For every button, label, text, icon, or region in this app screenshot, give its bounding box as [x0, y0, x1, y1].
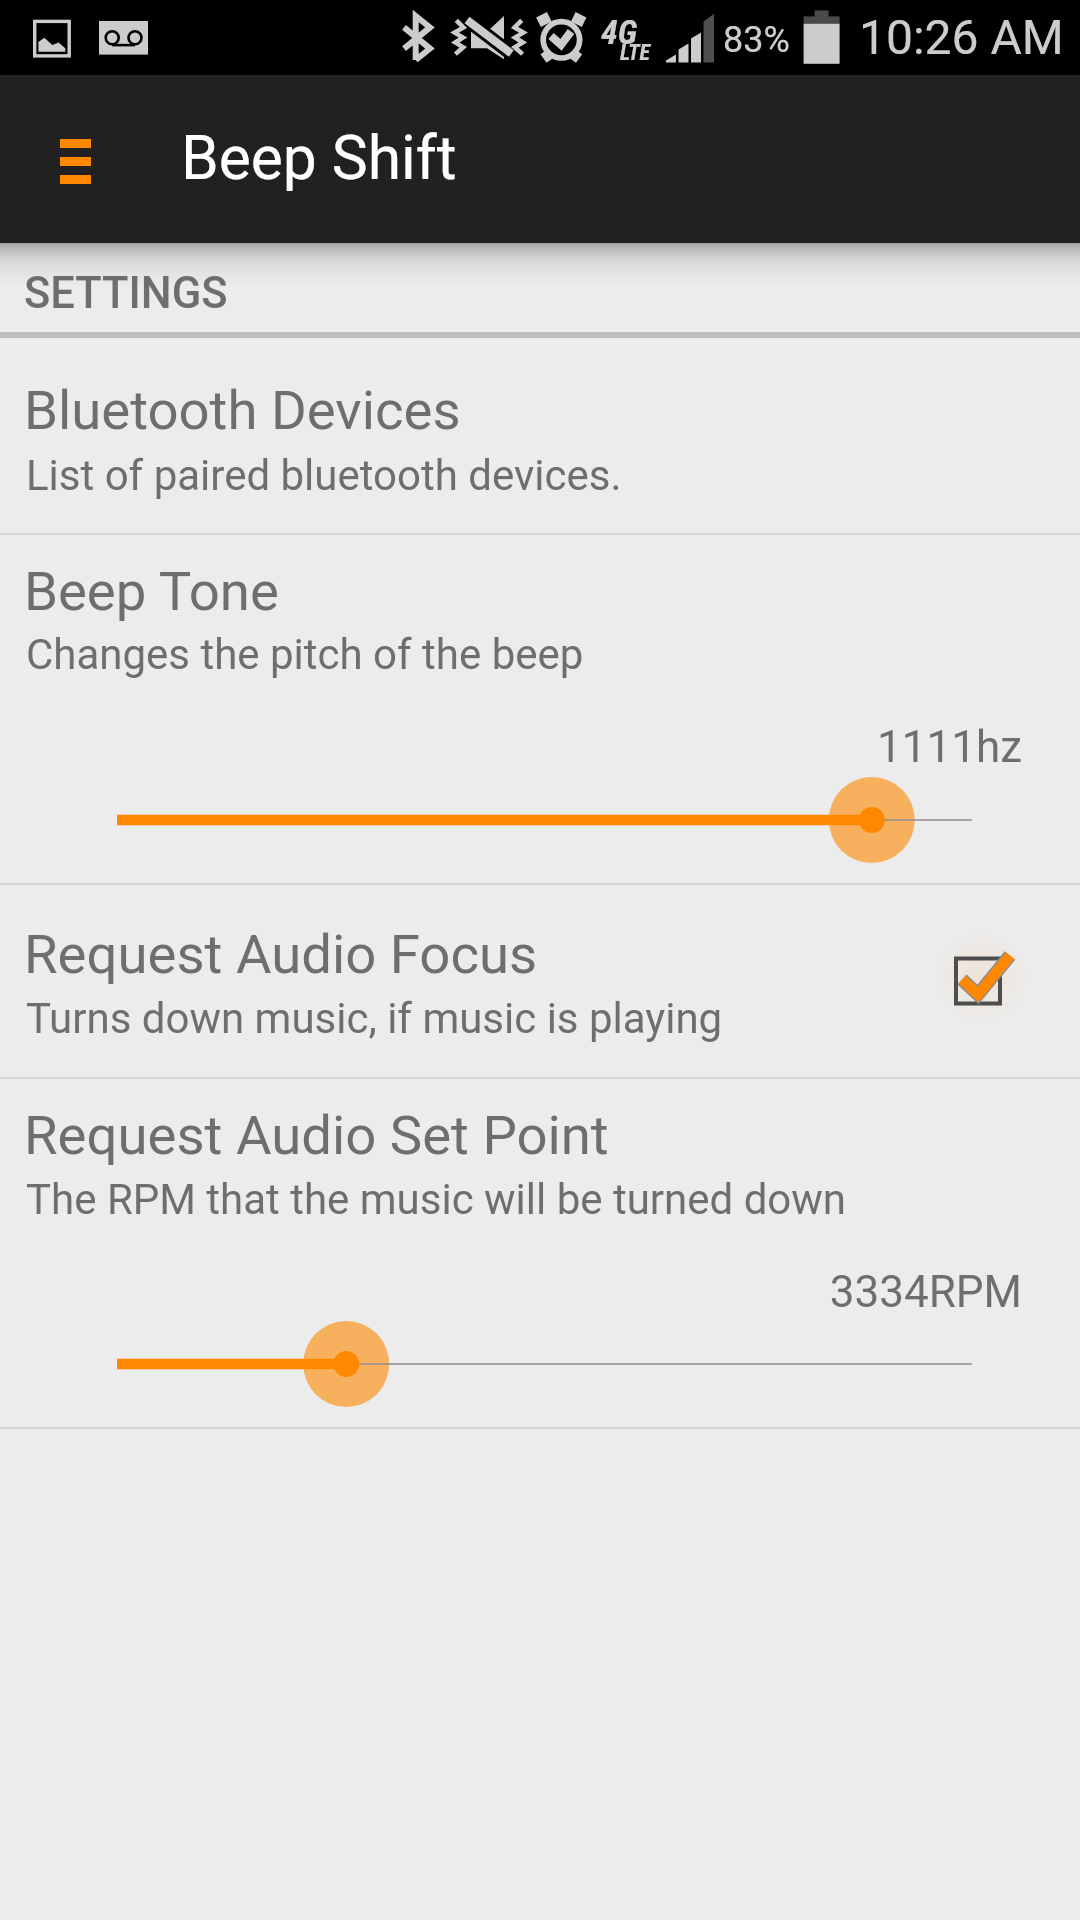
staticText: Beep Tone	[24, 559, 279, 623]
staticText: 4G	[601, 12, 637, 52]
button[interactable]: Open navigation menu	[38, 120, 113, 198]
staticText: Turns down music, if music is playing	[26, 994, 723, 1043]
staticText: Request Audio Set Point	[24, 1103, 609, 1167]
button[interactable]: Beep Tone	[0, 535, 1080, 883]
staticText: Changes the pitch of the beep	[26, 630, 584, 679]
staticText: 1111hz	[0, 721, 1022, 773]
staticText: List of paired bluetooth devices.	[26, 451, 622, 500]
staticText: 83%	[723, 19, 790, 61]
staticText: Beep Shift	[181, 123, 457, 194]
staticText: Request Audio Focus	[24, 922, 538, 986]
staticText: The RPM that the music will be turned do…	[26, 1175, 847, 1224]
button[interactable]: Request Audio Focus checkbox	[918, 921, 1038, 1041]
staticText: 3334RPM	[0, 1266, 1022, 1318]
staticText: SETTINGS	[24, 268, 228, 319]
button[interactable]: Request Audio Focus	[0, 885, 1080, 1077]
staticText: Bluetooth Devices	[24, 378, 461, 442]
staticText: LTE	[620, 40, 651, 66]
button[interactable]: Request Audio Set Point	[0, 1079, 1080, 1427]
staticText: 10:26 AM	[859, 9, 1064, 65]
button[interactable]: Bluetooth Devices	[0, 338, 1080, 533]
